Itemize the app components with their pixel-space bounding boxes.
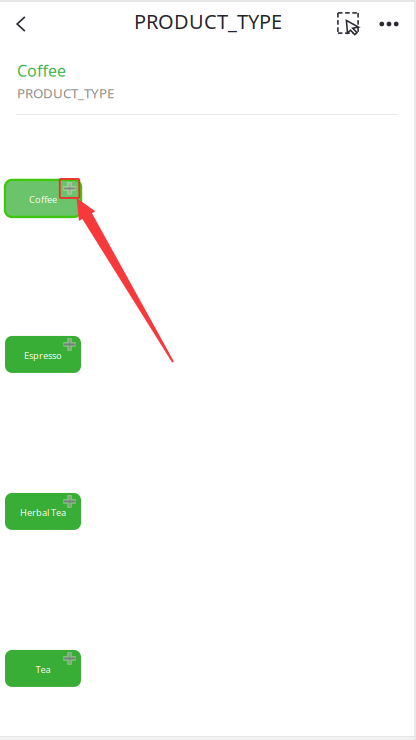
button[interactable]: Back [4, 2, 38, 46]
staticText: Espresso [24, 349, 62, 362]
button[interactable]: Herbal Tea [5, 492, 83, 531]
button[interactable]: Tea [5, 649, 83, 688]
staticText: Coffee [17, 60, 66, 81]
button[interactable]: Inspect element [325, 2, 371, 46]
staticText: Tea [35, 663, 50, 676]
staticText: PRODUCT_TYPE [17, 84, 114, 102]
staticText: PRODUCT_TYPE [134, 8, 282, 35]
button[interactable]: More options [371, 2, 407, 46]
button[interactable]: Coffee [5, 179, 83, 218]
staticText: Coffee [29, 193, 57, 206]
button[interactable]: Espresso [5, 335, 83, 374]
staticText: Herbal Tea [20, 506, 66, 519]
